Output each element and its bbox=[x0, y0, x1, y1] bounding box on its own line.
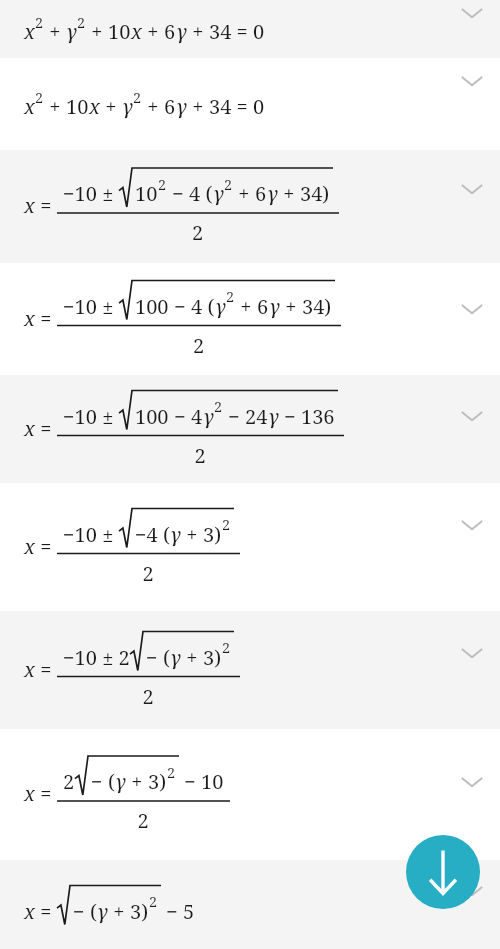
button[interactable] bbox=[0, 860, 500, 949]
button[interactable] bbox=[0, 0, 500, 58]
button[interactable] bbox=[0, 483, 500, 611]
button[interactable] bbox=[0, 150, 500, 263]
button[interactable] bbox=[0, 263, 500, 375]
button[interactable]: Scroll to bottom bbox=[406, 835, 480, 909]
button[interactable] bbox=[0, 611, 500, 729]
button[interactable] bbox=[0, 729, 500, 860]
button[interactable] bbox=[0, 375, 500, 483]
button[interactable] bbox=[0, 58, 500, 150]
